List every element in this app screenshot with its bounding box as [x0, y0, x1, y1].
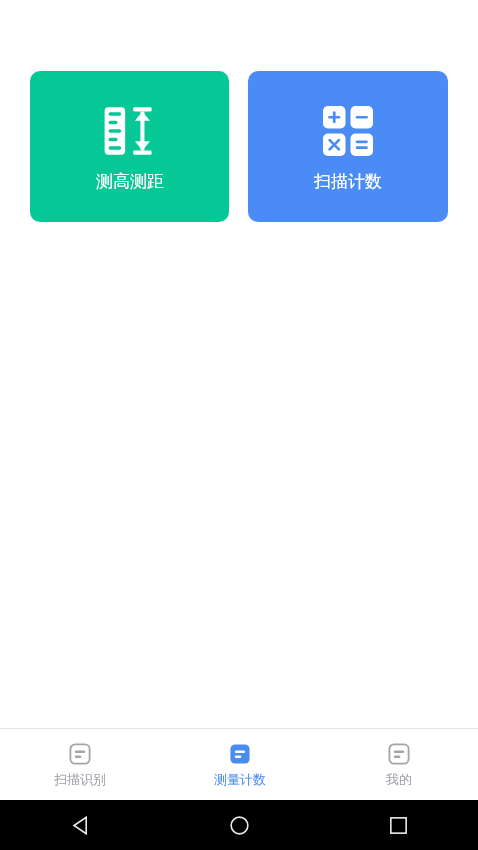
button[interactable]: 测高测距 — [30, 71, 229, 222]
button[interactable]: 扫描识别 — [0, 729, 160, 800]
button[interactable]: 我的 — [319, 729, 478, 800]
staticText: 测量计数 — [214, 771, 266, 787]
button[interactable]: Recents — [319, 800, 478, 850]
button[interactable]: 扫描计数 — [248, 71, 448, 222]
other: 测高测距 — [103, 104, 157, 158]
button[interactable]: Home — [160, 800, 319, 850]
button[interactable]: Back — [0, 800, 160, 850]
staticText: 扫描计数 — [314, 171, 382, 192]
button[interactable]: 测量计数 — [160, 729, 319, 800]
staticText: 扫描识别 — [54, 771, 106, 787]
staticText: 测高测距 — [96, 171, 164, 192]
staticText: 我的 — [386, 771, 412, 787]
other: 扫描计数 — [323, 106, 373, 156]
